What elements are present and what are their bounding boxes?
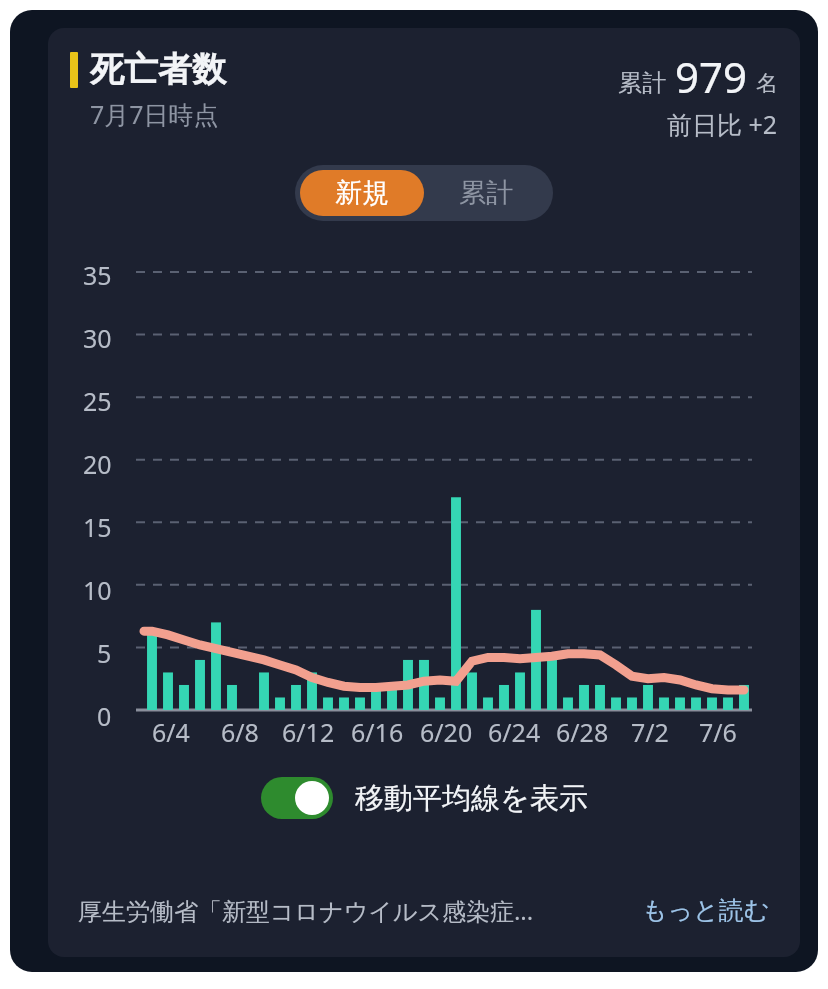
staticText: 6/12 bbox=[282, 715, 335, 749]
staticText: 0 bbox=[97, 699, 112, 733]
staticText: 6/24 bbox=[488, 715, 541, 749]
staticText: 厚生労働省「新型コロナウイルス感染症... bbox=[78, 894, 626, 927]
staticText: 15 bbox=[83, 510, 112, 544]
staticText: 6/4 bbox=[152, 715, 190, 749]
staticText: 6/28 bbox=[556, 715, 609, 749]
staticText: 7月7日時点 bbox=[90, 97, 219, 131]
staticText: 6/20 bbox=[420, 715, 473, 749]
staticText: もっと読む bbox=[642, 895, 770, 926]
staticText: 6/8 bbox=[221, 715, 259, 749]
staticText: 30 bbox=[83, 321, 112, 355]
button[interactable]: 新規 bbox=[300, 170, 424, 216]
staticText: 累計 bbox=[459, 176, 513, 210]
staticText: 移動平均線を表示 bbox=[355, 780, 588, 817]
staticText: 名 bbox=[756, 70, 778, 98]
staticText: 6/16 bbox=[351, 715, 404, 749]
button[interactable]: もっと読む bbox=[642, 895, 770, 926]
staticText: 死亡者数 bbox=[90, 48, 226, 91]
staticText: 25 bbox=[83, 384, 112, 418]
staticText: 979 bbox=[675, 48, 748, 105]
staticText: 10 bbox=[83, 573, 112, 607]
staticText: 7/6 bbox=[699, 715, 737, 749]
button[interactable]: 移動平均線を表示 bbox=[261, 777, 333, 819]
staticText: 前日比 +2 bbox=[667, 107, 778, 141]
staticText: 新規 bbox=[335, 176, 389, 210]
staticText: 7/2 bbox=[631, 715, 669, 749]
staticText: 累計 bbox=[618, 68, 666, 98]
staticText: 5 bbox=[97, 636, 112, 670]
staticText: 20 bbox=[83, 447, 112, 481]
staticText: 35 bbox=[83, 258, 112, 292]
button[interactable]: 累計 bbox=[424, 170, 548, 216]
